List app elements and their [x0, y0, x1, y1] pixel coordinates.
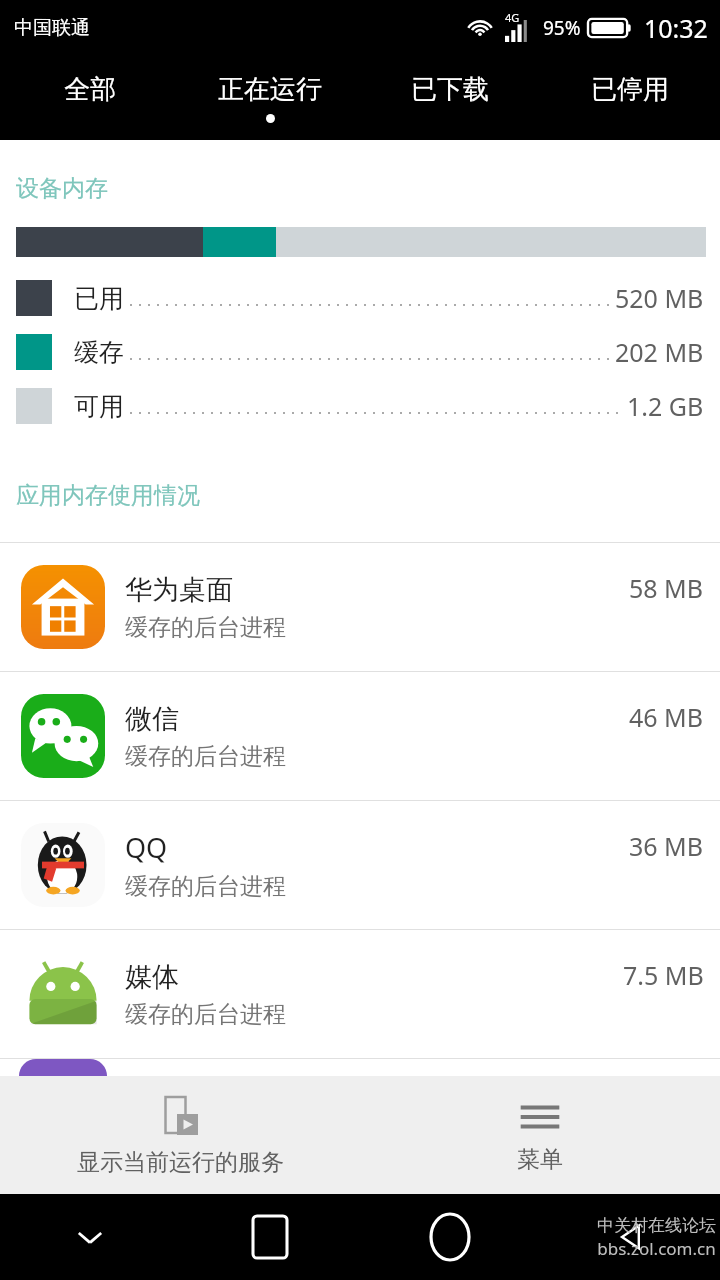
staticText: 缓存	[74, 337, 124, 368]
button[interactable]: 缓存	[0, 325, 720, 379]
staticText: 36 MB	[629, 829, 704, 863]
button[interactable]: Hide	[0, 1194, 180, 1280]
staticText: 7.5 MB	[623, 958, 704, 992]
staticText: 4G	[505, 10, 520, 25]
staticText: 媒体	[125, 960, 179, 994]
staticText: 缓存的后台进程	[125, 872, 286, 901]
button[interactable]: 可用	[0, 379, 720, 433]
staticText: 微信	[125, 702, 179, 736]
button[interactable]: QQ	[0, 801, 720, 929]
staticText: 95%	[543, 15, 581, 41]
button[interactable]: 已停用	[540, 56, 720, 140]
button[interactable]: Recents	[180, 1194, 360, 1280]
button[interactable]: 全部	[0, 56, 180, 140]
staticText: 已停用	[591, 73, 669, 106]
staticText: 设备内存	[16, 174, 108, 203]
staticText: 中关村在线论坛 bbs.zol.com.cn	[597, 1215, 716, 1260]
button[interactable]: 媒体	[0, 930, 720, 1058]
staticText: 可用	[74, 391, 124, 422]
staticText: 应用内存使用情况	[16, 481, 200, 510]
button[interactable]: 已下载	[360, 56, 540, 140]
staticText: 正在运行	[218, 73, 322, 106]
button[interactable]: 已用	[0, 271, 720, 325]
button[interactable]: Back	[540, 1194, 720, 1280]
staticText: 缓存的后台进程	[125, 613, 286, 642]
staticText: 已下载	[411, 73, 489, 106]
staticText: 华为桌面	[125, 573, 233, 607]
staticText: 已用	[74, 283, 124, 314]
staticText: 58 MB	[629, 571, 704, 605]
button[interactable]: 菜单	[360, 1076, 720, 1194]
staticText: 10:32	[644, 11, 708, 45]
staticText: 202 MB	[615, 335, 704, 369]
staticText: 全部	[64, 73, 116, 106]
staticText: 显示当前运行的服务	[77, 1148, 284, 1177]
staticText: 缓存的后台进程	[125, 742, 286, 771]
staticText: 缓存的后台进程	[125, 1000, 286, 1029]
button[interactable]: Home	[360, 1194, 540, 1280]
staticText: 46 MB	[629, 700, 704, 734]
button[interactable]: 华为桌面	[0, 543, 720, 671]
staticText: 1.2 GB	[627, 389, 704, 423]
button[interactable]: 正在运行	[180, 56, 360, 140]
staticText: 中国联通	[14, 16, 90, 40]
staticText: 菜单	[517, 1145, 563, 1174]
button[interactable]: 微信	[0, 672, 720, 800]
button[interactable]: 显示当前运行的服务	[0, 1076, 360, 1194]
staticText: QQ	[125, 829, 168, 866]
staticText: 520 MB	[615, 281, 704, 315]
